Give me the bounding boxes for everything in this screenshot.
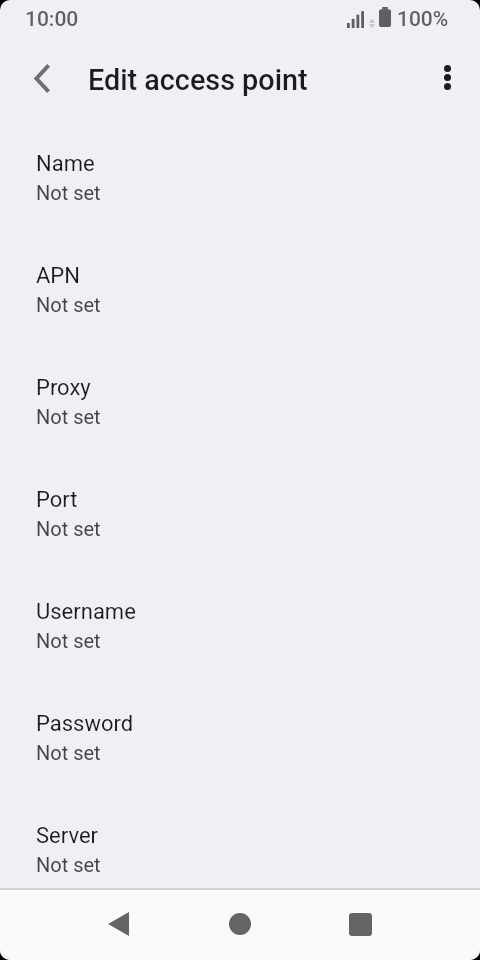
button[interactable]: Proxy [0,361,480,473]
staticText: Not set [36,741,101,764]
button[interactable]: Home [216,900,264,948]
staticText: Proxy [36,375,91,401]
button[interactable]: Navigate up [18,54,66,102]
button[interactable]: Back [94,900,142,948]
staticText: Password [36,711,134,737]
button[interactable]: Username [0,585,480,697]
staticText: Not set [36,405,101,428]
button[interactable]: Server [0,809,480,888]
staticText: APN [36,263,80,289]
staticText: 10:00 [25,7,79,32]
staticText: Server [36,823,99,849]
button[interactable]: Name [0,137,480,249]
button[interactable]: APN [0,249,480,361]
staticText: Username [36,599,136,625]
button[interactable]: Recent apps [336,900,384,948]
button[interactable]: Port [0,473,480,585]
button[interactable]: Password [0,697,480,809]
staticText: Port [36,487,78,513]
staticText: Not set [36,293,101,316]
staticText: Not set [36,181,101,204]
button[interactable]: More options [423,53,471,101]
staticText: Edit access point [88,63,308,97]
staticText: Not set [36,629,101,652]
staticText: Not set [36,517,101,540]
staticText: 100% [397,7,449,32]
staticText: Name [36,151,95,177]
staticText: Not set [36,853,101,876]
